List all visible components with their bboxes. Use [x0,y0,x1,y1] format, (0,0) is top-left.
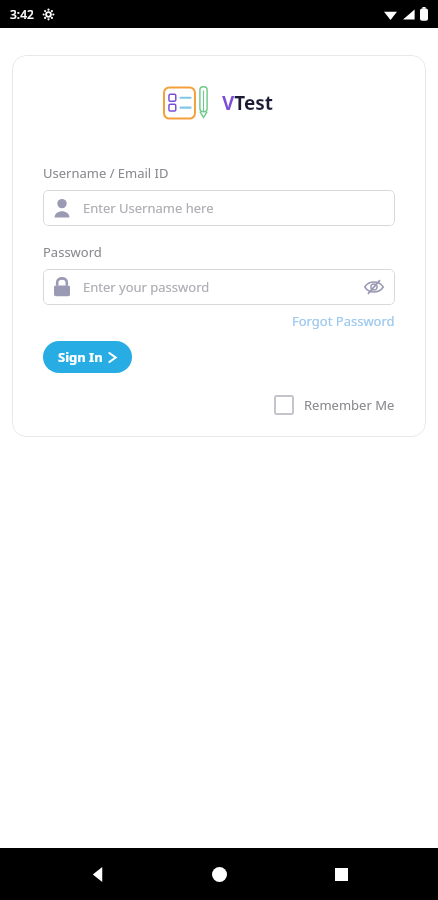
button[interactable]: Enter Username here [43,190,395,226]
button[interactable]: Back [74,850,122,898]
button[interactable]: Sign In [43,341,132,373]
button[interactable]: Remember Me [274,395,395,415]
staticText: Forgot Password [292,312,395,330]
button[interactable]: Recents [317,850,365,898]
staticText: 3:42 [10,6,34,22]
staticText: Sign In [58,348,103,366]
staticText: VTest [222,90,274,116]
staticText: Enter Username here [83,199,386,217]
staticText: Enter your password [83,278,362,296]
staticText: Password [43,243,102,261]
button[interactable]: Show password [362,275,386,299]
button[interactable]: Forgot Password [292,312,395,330]
button[interactable]: Home [195,850,243,898]
button[interactable]: Enter your password [43,269,395,305]
staticText: Username / Email ID [43,164,169,182]
staticText: Remember Me [304,396,395,414]
